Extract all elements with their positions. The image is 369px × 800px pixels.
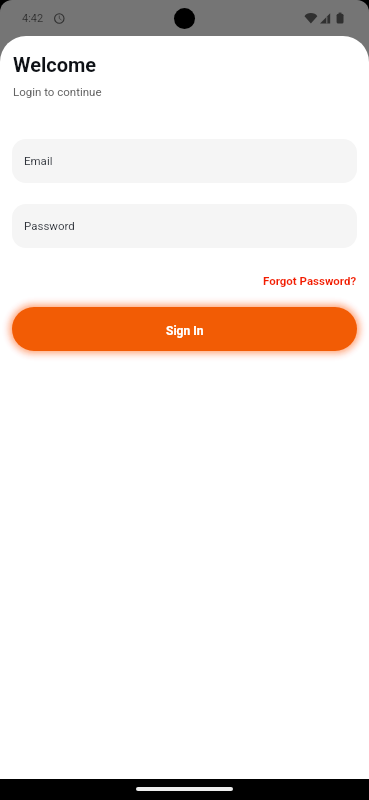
button[interactable]: Sign In: [12, 307, 357, 351]
staticText: Sign In: [166, 324, 204, 338]
staticText: Email: [24, 154, 53, 167]
button[interactable]: Forgot Password?: [263, 274, 357, 287]
button[interactable]: Email: [12, 139, 357, 183]
other: Home: [136, 787, 233, 791]
staticText: Login to continue: [13, 85, 102, 98]
staticText: Welcome: [13, 53, 97, 76]
staticText: Password: [24, 219, 75, 232]
button[interactable]: Password: [12, 204, 357, 248]
staticText: 4:42: [22, 12, 44, 25]
staticText: Forgot Password?: [263, 274, 357, 287]
